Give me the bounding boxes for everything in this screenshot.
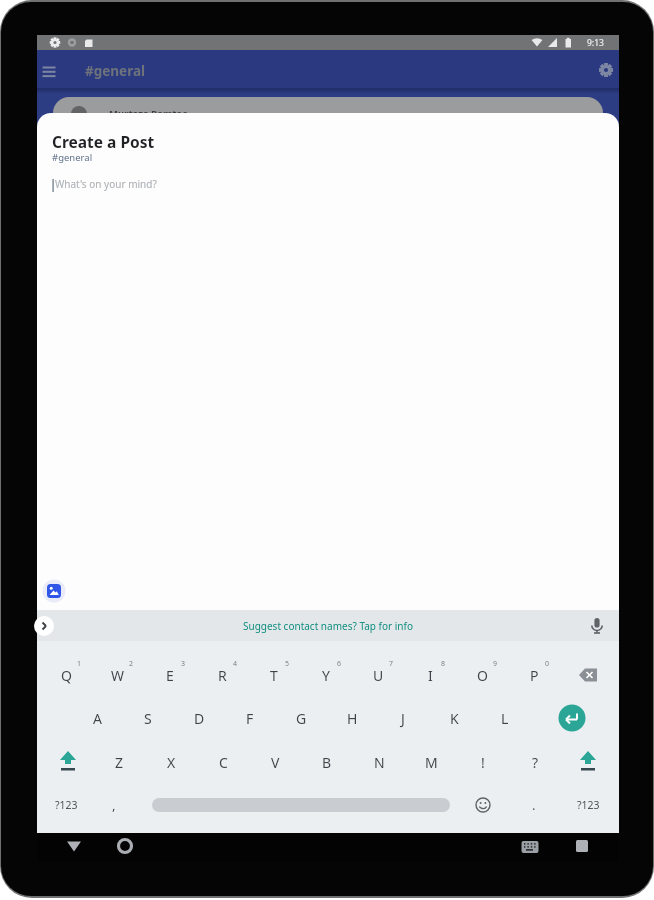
staticText: C [219, 753, 228, 772]
button[interactable] [37, 50, 619, 88]
button[interactable] [54, 748, 82, 776]
staticText: R [218, 666, 227, 685]
staticText: F [246, 709, 254, 728]
button[interactable] [561, 704, 589, 732]
staticText: E [166, 666, 174, 685]
button[interactable]: V [255, 748, 295, 776]
staticText: Murtaza Ramtoo [109, 107, 189, 120]
button[interactable] [520, 837, 540, 857]
button[interactable] [39, 60, 59, 80]
button[interactable]: 7 [383, 650, 399, 678]
button[interactable]: 9 [487, 650, 503, 678]
button[interactable]: Y [306, 661, 346, 689]
button[interactable]: 3 [175, 650, 191, 678]
staticText: 5 [285, 659, 290, 669]
button[interactable]: 9:13 [575, 29, 615, 57]
button[interactable]: ? [515, 748, 555, 776]
button[interactable]: J [383, 704, 423, 732]
button[interactable]: O [462, 661, 502, 689]
button[interactable]: B [307, 748, 347, 776]
button[interactable]: #general [60, 57, 170, 85]
button[interactable]: ?123 [568, 791, 608, 819]
button[interactable]: 1 [71, 650, 87, 678]
staticText: , [112, 796, 116, 814]
button[interactable] [572, 837, 592, 857]
staticText: Q [61, 666, 72, 685]
staticText: #general [85, 62, 146, 80]
staticText: L [501, 709, 509, 728]
staticText: 4 [233, 659, 238, 669]
staticText: 6 [337, 659, 342, 669]
staticText: D [194, 709, 205, 728]
button[interactable]: E [150, 661, 190, 689]
button[interactable]: P [514, 661, 554, 689]
button[interactable]: K [434, 704, 474, 732]
staticText: Suggest contact names? Tap for info [243, 619, 413, 633]
staticText: W [111, 666, 125, 685]
button[interactable]: S [128, 704, 168, 732]
button[interactable]: . [522, 791, 546, 819]
staticText: T [270, 666, 278, 685]
button[interactable]: F [230, 704, 270, 732]
staticText: Create a Post [52, 131, 155, 152]
button[interactable]: U [358, 661, 398, 689]
button[interactable]: M [411, 748, 451, 776]
staticText: ?123 [55, 798, 78, 812]
button[interactable]: 8 [435, 650, 451, 678]
button[interactable]: , [102, 791, 126, 819]
button[interactable]: D [179, 704, 219, 732]
button[interactable]: I [410, 661, 450, 689]
button[interactable]: Q [46, 661, 86, 689]
button[interactable]: G [281, 704, 321, 732]
staticText: 2 [129, 659, 134, 669]
staticText: A [93, 709, 102, 728]
button[interactable]: ?123 [46, 791, 86, 819]
button[interactable]: 0 [539, 650, 555, 678]
button[interactable] [574, 661, 602, 689]
button[interactable]: W [98, 661, 138, 689]
staticText: P [530, 666, 539, 685]
button[interactable] [152, 798, 450, 812]
staticText: M [425, 753, 438, 772]
button[interactable] [43, 581, 65, 603]
staticText: G [296, 709, 307, 728]
button[interactable]: 2 [123, 650, 139, 678]
staticText: O [477, 666, 488, 685]
staticText: I [428, 666, 433, 685]
button[interactable]: X [151, 748, 191, 776]
staticText: K [450, 709, 459, 728]
staticText: 9 [493, 659, 498, 669]
button[interactable] [64, 836, 84, 856]
staticText: ? [532, 753, 539, 772]
button[interactable] [115, 836, 135, 856]
button[interactable]: A [77, 704, 117, 732]
staticText: B [322, 753, 332, 772]
button[interactable]: 6 [331, 650, 347, 678]
staticText: J [401, 709, 405, 728]
staticText: Z [115, 753, 124, 772]
staticText: 1 [77, 659, 82, 669]
staticText: ?123 [577, 798, 600, 812]
staticText: What's on your mind? [55, 177, 157, 191]
button[interactable]: 4 [227, 650, 243, 678]
button[interactable]: Suggest contact names? Tap for info [168, 612, 488, 640]
staticText: X [167, 753, 176, 772]
button[interactable]: C [203, 748, 243, 776]
staticText: V [271, 753, 280, 772]
button[interactable]: T [254, 661, 294, 689]
button[interactable]: 5 [279, 650, 295, 678]
staticText: 8 [441, 659, 446, 669]
staticText: S [144, 709, 152, 728]
staticText: H [347, 709, 358, 728]
button[interactable]: H [332, 704, 372, 732]
button[interactable] [596, 60, 616, 80]
staticText: . [532, 796, 536, 814]
button[interactable] [37, 610, 619, 641]
button[interactable] [574, 748, 602, 776]
button[interactable]: ! [463, 748, 503, 776]
staticText: N [374, 753, 385, 772]
button[interactable]: L [485, 704, 525, 732]
button[interactable]: N [359, 748, 399, 776]
button[interactable]: R [202, 661, 242, 689]
button[interactable]: Z [99, 748, 139, 776]
